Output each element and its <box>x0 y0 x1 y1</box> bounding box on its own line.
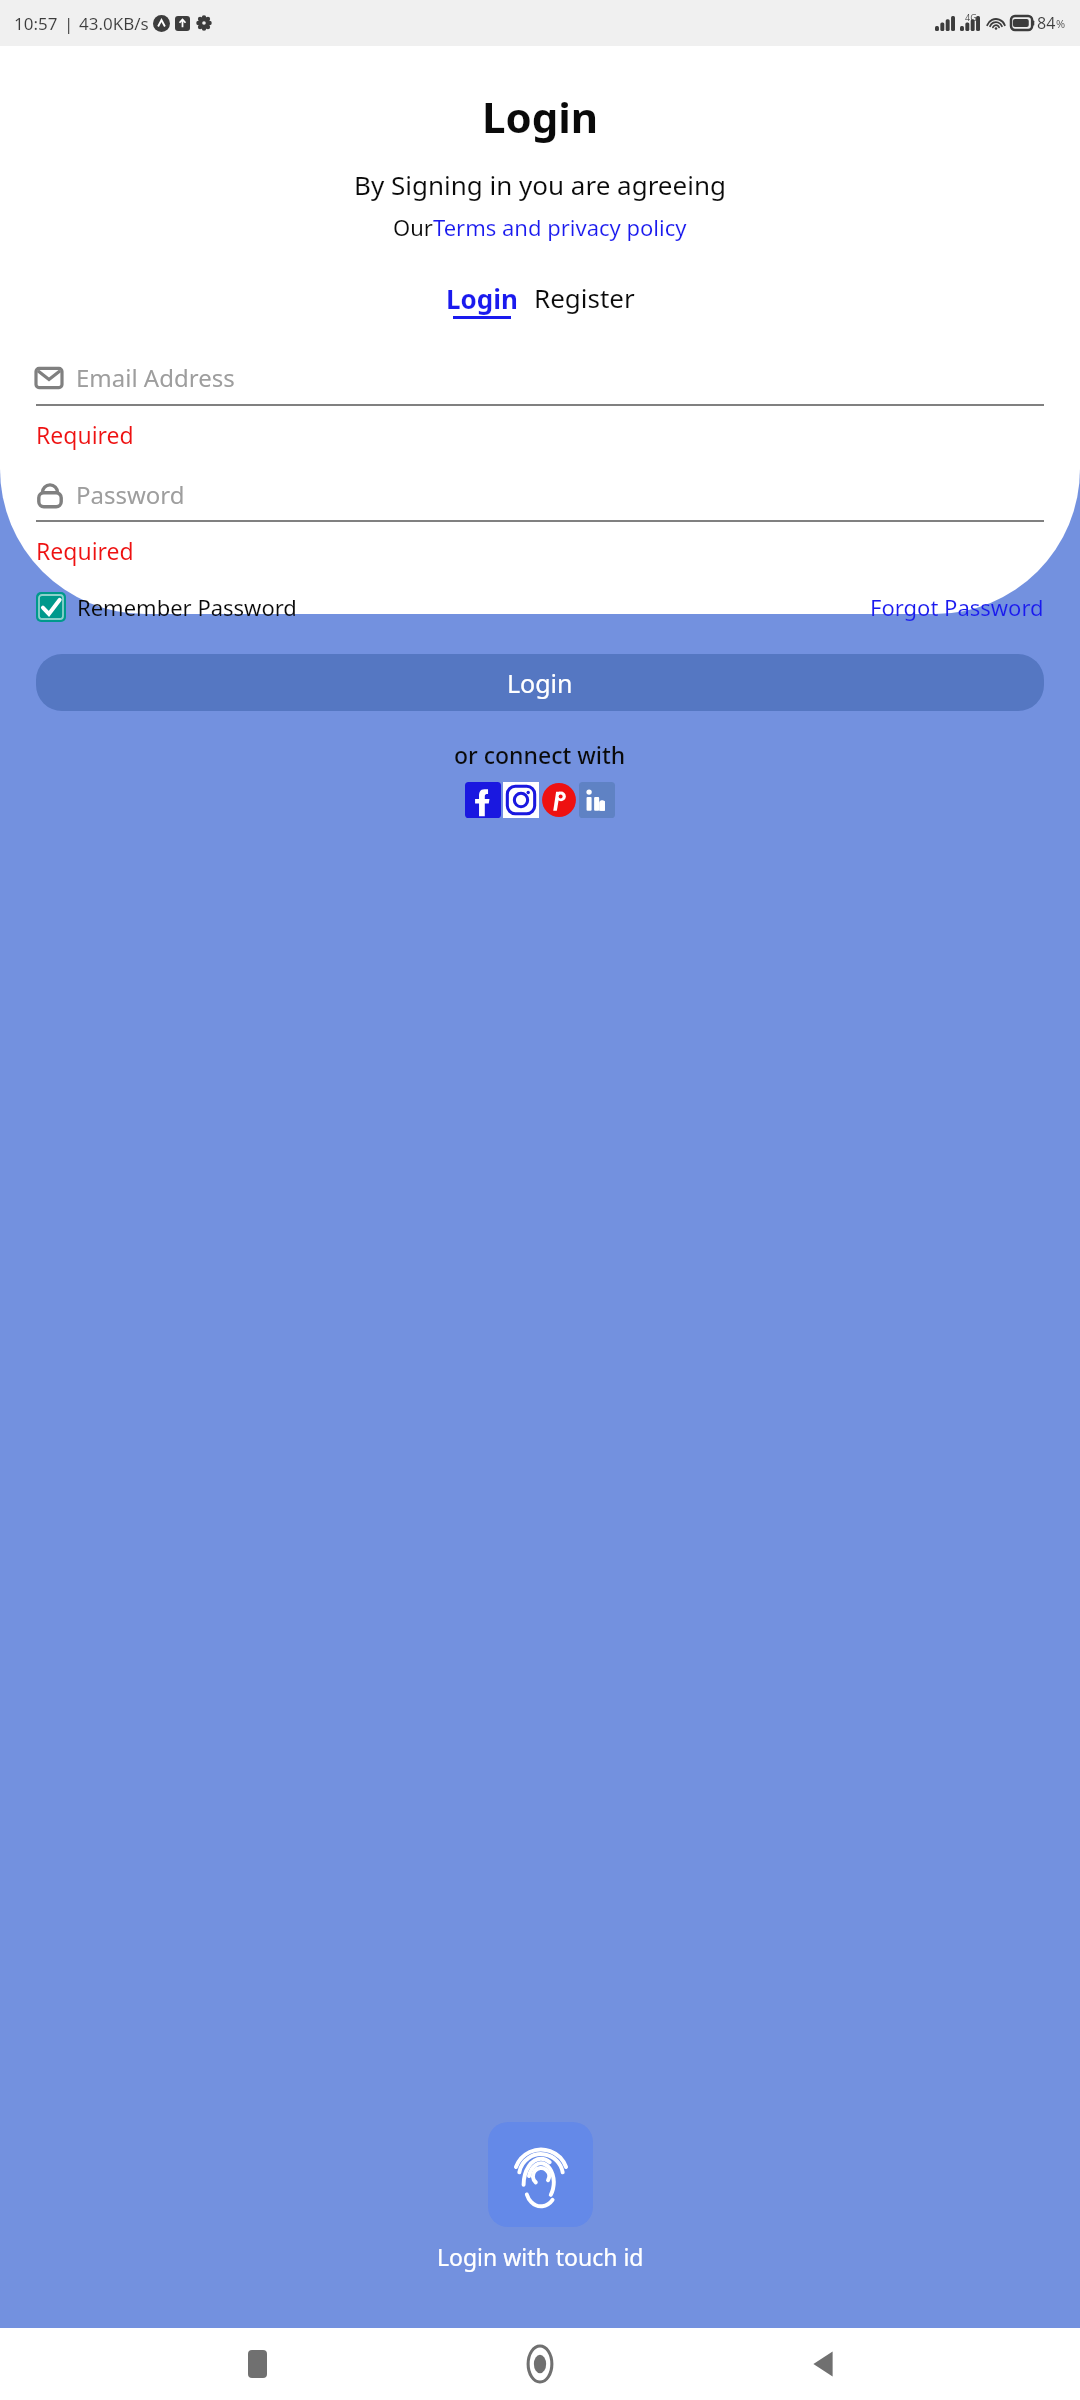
button[interactable]: Instagram <box>503 782 539 818</box>
button[interactable]: Back <box>797 2338 849 2390</box>
staticText: 4G <box>965 11 977 23</box>
staticText: Remember Password <box>77 592 297 622</box>
staticText: Login <box>446 281 518 316</box>
staticText: % <box>1056 16 1066 31</box>
button[interactable]: LinkedIn <box>579 782 615 818</box>
staticText: Login <box>482 88 599 145</box>
staticText: By Signing in you are agreeing <box>354 167 726 202</box>
button[interactable]: Home <box>514 2338 566 2390</box>
button[interactable]: Remember Password <box>36 592 297 622</box>
staticText: 43.0KB/s <box>79 12 149 35</box>
button[interactable]: Login <box>36 654 1044 711</box>
staticText: 10:57 <box>14 12 58 35</box>
staticText: Required <box>36 535 134 566</box>
button[interactable]: Login with touch id <box>488 2122 593 2227</box>
staticText: Login with touch id <box>437 2241 644 2272</box>
staticText: or connect with <box>454 739 626 770</box>
button[interactable]: Password <box>36 478 1044 511</box>
staticText: 84 <box>1037 12 1056 34</box>
button[interactable]: Register <box>534 280 635 319</box>
button[interactable]: Login <box>446 281 518 319</box>
staticText: Login <box>507 666 573 700</box>
button[interactable]: Email Address <box>36 361 1044 394</box>
button[interactable]: Facebook <box>465 782 501 818</box>
staticText: Required <box>36 419 134 450</box>
staticText: Our <box>393 212 433 242</box>
staticText: Password <box>76 478 185 511</box>
button[interactable]: Forgot Password <box>870 592 1044 622</box>
button[interactable]: Recents <box>231 2338 283 2390</box>
button[interactable]: Terms and privacy policy <box>433 212 687 242</box>
staticText: | <box>64 12 74 35</box>
staticText: Email Address <box>76 361 235 394</box>
button[interactable]: Pinterest <box>541 782 577 818</box>
